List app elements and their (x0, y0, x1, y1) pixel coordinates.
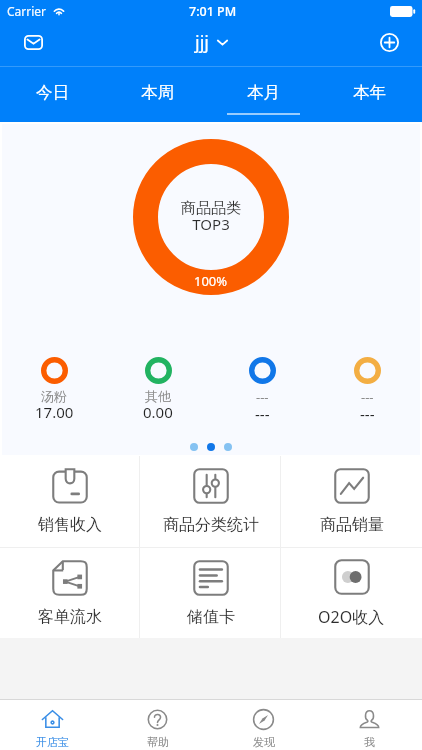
button[interactable]: Messages (18, 27, 48, 57)
staticText: 今日 (36, 82, 69, 103)
button[interactable]: 商品分类统计 (140, 456, 281, 547)
staticText: 商品分类统计 (163, 515, 259, 535)
staticText: 其他 (145, 388, 171, 404)
button[interactable]: 帮助 (105, 700, 210, 750)
staticText: 商品品类 TOP3 (181, 199, 241, 234)
button[interactable]: 今日 (0, 66, 105, 122)
button[interactable]: 本年 (316, 66, 422, 122)
staticText: 100% (194, 272, 228, 290)
button[interactable]: 本周 (105, 66, 210, 122)
button[interactable]: Add (374, 27, 404, 57)
staticText: 开店宝 (36, 735, 69, 749)
button[interactable]: 我 (316, 700, 422, 750)
staticText: 17.00 (35, 402, 74, 422)
staticText: 客单流水 (38, 607, 102, 627)
staticText: 汤粉 (41, 388, 67, 404)
staticText: --- (360, 404, 375, 424)
staticText: 本月 (247, 82, 280, 103)
staticText: 发现 (253, 735, 275, 749)
staticText: 销售收入 (38, 515, 102, 535)
staticText: 储值卡 (187, 607, 235, 627)
button[interactable]: jjj (195, 30, 228, 55)
button[interactable]: 客单流水 (0, 548, 140, 638)
button[interactable]: 本月 (210, 66, 316, 122)
staticText: O2O收入 (318, 606, 385, 628)
staticText: --- (256, 388, 269, 406)
staticText: 帮助 (147, 735, 169, 749)
staticText: --- (361, 388, 374, 406)
staticText: 商品销量 (320, 515, 384, 535)
button[interactable]: 开店宝 (0, 700, 105, 750)
button[interactable]: 发现 (210, 700, 316, 750)
button[interactable]: 销售收入 (0, 456, 140, 547)
staticText: 0.00 (143, 402, 173, 422)
staticText: jjj (195, 30, 209, 55)
button[interactable]: 储值卡 (140, 548, 281, 638)
staticText: 我 (364, 735, 375, 749)
staticText: Carrier (7, 3, 47, 19)
staticText: --- (255, 404, 270, 424)
staticText: 本年 (353, 82, 386, 103)
staticText: 7:01 PM (189, 3, 237, 20)
button[interactable]: O2O收入 (281, 548, 422, 638)
staticText: 本周 (141, 82, 174, 103)
button[interactable]: 商品销量 (281, 456, 422, 547)
